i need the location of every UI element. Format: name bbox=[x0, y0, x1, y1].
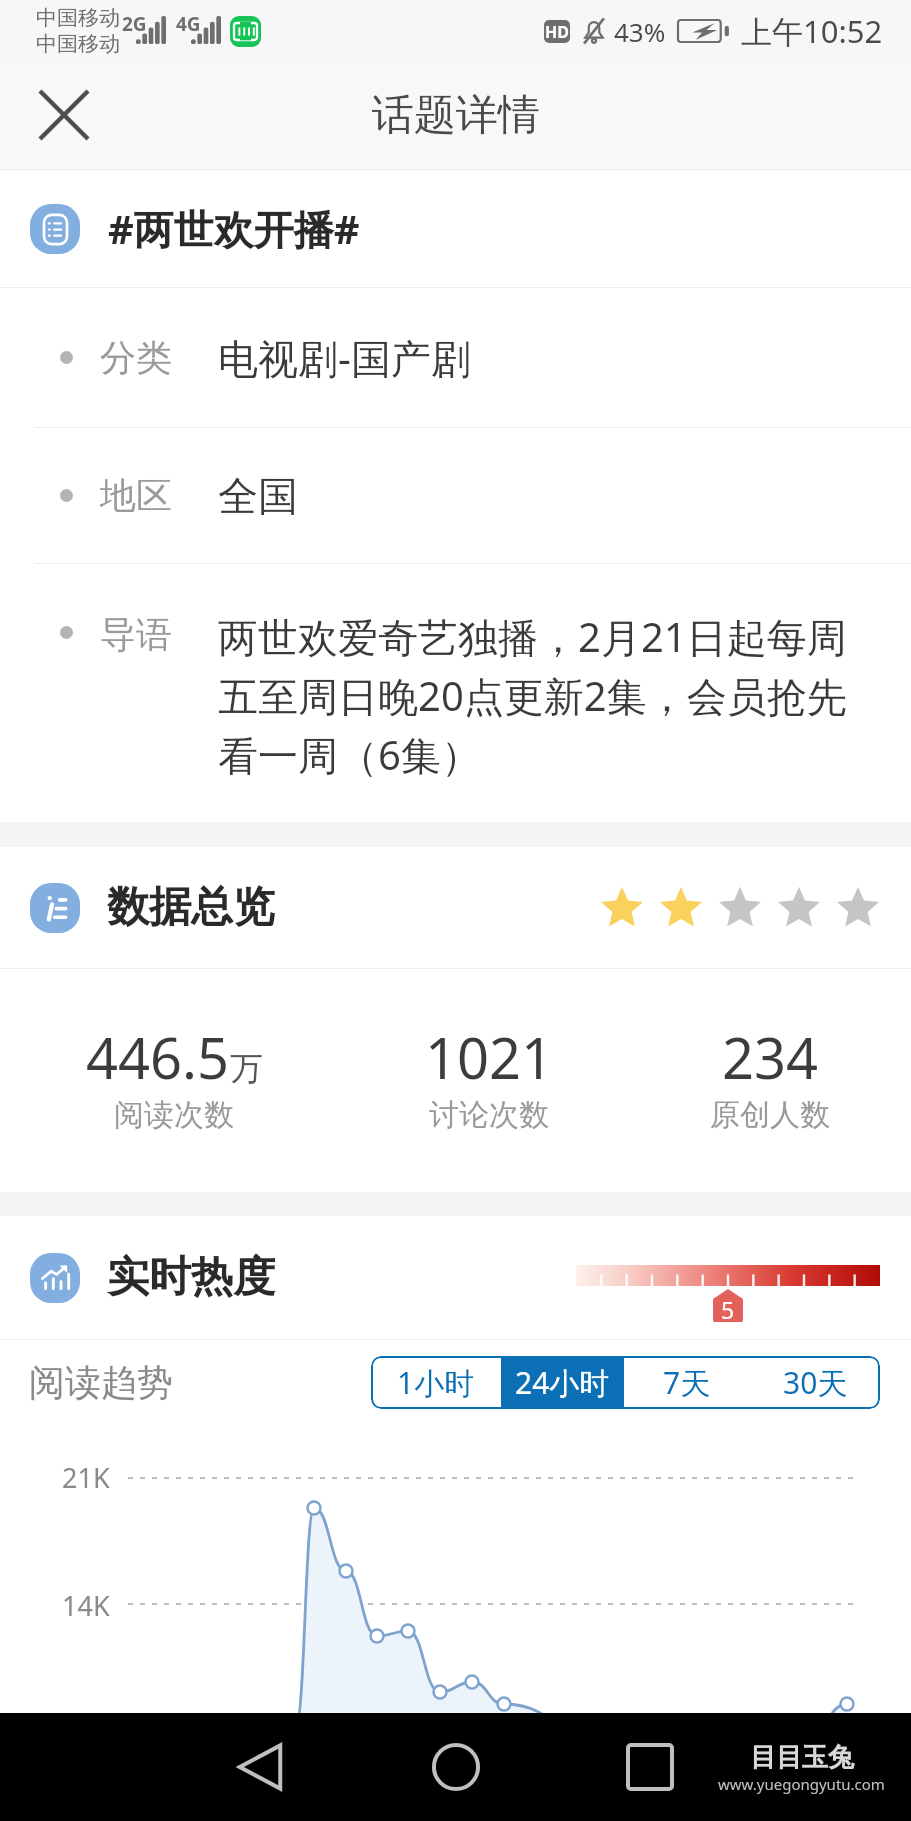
staticText: 话题详情 bbox=[372, 89, 540, 142]
staticText: #两世欢开播# bbox=[108, 201, 360, 256]
staticText: 上午10:52 bbox=[741, 10, 883, 52]
staticText: 43% bbox=[614, 14, 666, 49]
staticText: 中国移动 bbox=[36, 5, 120, 31]
staticText: 两世欢爱奇艺独播，2月21日起每周 bbox=[218, 609, 847, 664]
staticText: 14K bbox=[62, 1587, 110, 1624]
staticText: 全国 bbox=[218, 471, 298, 521]
button[interactable]: 关闭 bbox=[16, 67, 112, 163]
staticText: 24小时 bbox=[515, 1362, 610, 1403]
staticText: 目目玉兔 bbox=[750, 1741, 854, 1774]
staticText: 导语 bbox=[100, 612, 172, 657]
staticText: 数据总览 bbox=[107, 881, 275, 934]
staticText: 7天 bbox=[663, 1362, 711, 1403]
staticText: 4G bbox=[176, 11, 201, 37]
staticText: 1小时 bbox=[397, 1362, 475, 1403]
button[interactable]: 评分 2 星 bbox=[600, 886, 880, 929]
staticText: 21K bbox=[62, 1459, 110, 1496]
staticText: 2G bbox=[122, 11, 147, 37]
staticText: 实时热度 bbox=[107, 1251, 275, 1304]
button[interactable]: #两世欢开播# bbox=[0, 170, 911, 287]
button[interactable]: 地区 bbox=[0, 428, 911, 563]
button[interactable]: 主页 bbox=[412, 1731, 500, 1803]
staticText: 电视剧-国产剧 bbox=[218, 330, 471, 385]
staticText: 中国移动 bbox=[36, 31, 120, 57]
button[interactable]: 30天 bbox=[750, 1356, 880, 1409]
button[interactable]: 最近应用 bbox=[606, 1731, 694, 1803]
button[interactable]: 返回 bbox=[216, 1731, 304, 1803]
button[interactable]: 1小时 bbox=[371, 1356, 501, 1409]
staticText: 阅读趋势 bbox=[29, 1360, 173, 1405]
staticText: 5 bbox=[721, 1294, 735, 1325]
staticText: 万 bbox=[230, 1048, 263, 1090]
staticText: 阅读次数 bbox=[114, 1096, 234, 1134]
button[interactable]: 分类 bbox=[0, 288, 911, 427]
button[interactable]: 7天 bbox=[624, 1356, 750, 1409]
staticText: 1021 bbox=[425, 1019, 554, 1095]
staticText: www.yuegongyutu.com bbox=[718, 1774, 885, 1794]
staticText: 30天 bbox=[783, 1362, 848, 1403]
staticText: 234 bbox=[722, 1019, 819, 1095]
staticText: 讨论次数 bbox=[429, 1096, 549, 1134]
staticText: 地区 bbox=[100, 473, 172, 518]
button[interactable]: 24小时 bbox=[501, 1356, 624, 1409]
staticText: 五至周日晚20点更新2集，会员抢先 bbox=[218, 668, 847, 723]
staticText: 分类 bbox=[100, 335, 172, 380]
staticText: 446.5 bbox=[86, 1019, 230, 1095]
staticText: 原创人数 bbox=[710, 1096, 830, 1134]
staticText: 看一周（6集） bbox=[218, 727, 481, 782]
staticText: HD bbox=[545, 21, 569, 43]
